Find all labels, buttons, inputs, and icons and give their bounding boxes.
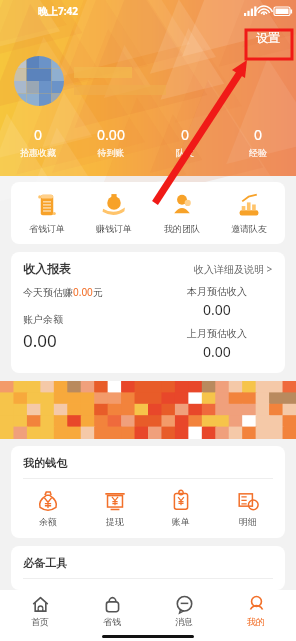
button[interactable]: 设置 — [250, 27, 286, 48]
button[interactable]: 0 — [3, 125, 73, 158]
button[interactable]: 消息 — [152, 595, 216, 627]
staticText: 0 — [223, 125, 293, 144]
staticText: 我的钱包 — [23, 456, 67, 470]
button[interactable]: 0 — [150, 125, 220, 158]
staticText: 收入报表 — [23, 261, 71, 276]
staticText: 我的团队 — [150, 223, 214, 234]
staticText: 上月预估收入 — [187, 327, 247, 340]
staticText: 必备工具 — [23, 556, 67, 570]
button[interactable]: 余额 — [18, 489, 78, 527]
button[interactable]: 账单 — [151, 489, 211, 527]
button[interactable]: Promotion banner — [0, 381, 296, 438]
staticText: 拾惠收藏 — [3, 147, 73, 158]
staticText: 0.00 — [203, 342, 231, 361]
staticText: 余额 — [18, 516, 78, 527]
staticText: 0 — [3, 125, 73, 144]
staticText: 经验 — [223, 147, 293, 158]
staticText: 元 — [93, 286, 103, 299]
staticText: 省钱 — [80, 616, 144, 627]
staticText: 首页 — [8, 616, 72, 627]
button[interactable]: 明细 — [218, 489, 278, 527]
staticText: 账户余额 — [23, 313, 63, 326]
staticText: 消息 — [152, 616, 216, 627]
staticText: 0.00 — [76, 125, 146, 144]
button[interactable]: 我的团队 — [150, 192, 214, 234]
button[interactable]: 省钱订单 — [15, 192, 79, 234]
staticText: 0.00 — [23, 329, 57, 352]
staticText: 队友 — [150, 147, 220, 158]
button[interactable]: 赚钱订单 — [82, 192, 146, 234]
button[interactable]: 提现 — [85, 489, 145, 527]
staticText: 0.00 — [203, 300, 231, 319]
staticText: 本月预估收入 — [187, 285, 247, 298]
staticText: 收入详细及说明 > — [194, 262, 273, 276]
staticText: 设置 — [256, 30, 280, 45]
staticText: 0 — [150, 125, 220, 144]
staticText: 邀请队友 — [217, 223, 281, 234]
button[interactable]: 0.00 — [76, 125, 146, 158]
button[interactable]: Avatar — [14, 56, 64, 106]
staticText: 今天预估赚 — [23, 286, 73, 299]
staticText: 赚钱订单 — [82, 223, 146, 234]
staticText: 明细 — [218, 516, 278, 527]
button[interactable]: 省钱 — [80, 595, 144, 627]
staticText: 0.00 — [73, 285, 93, 299]
staticText: 省钱订单 — [15, 223, 79, 234]
button[interactable]: 0 — [223, 125, 293, 158]
staticText: 待到账 — [76, 147, 146, 158]
staticText: 我的 — [224, 616, 288, 627]
staticText: 账单 — [151, 516, 211, 527]
button[interactable]: 我的 — [224, 595, 288, 627]
staticText: 晚上7:42 — [38, 4, 78, 18]
staticText: 提现 — [85, 516, 145, 527]
button[interactable]: 邀请队友 — [217, 192, 281, 234]
button[interactable]: 收入报表 — [11, 252, 285, 285]
button[interactable]: 首页 — [8, 595, 72, 627]
